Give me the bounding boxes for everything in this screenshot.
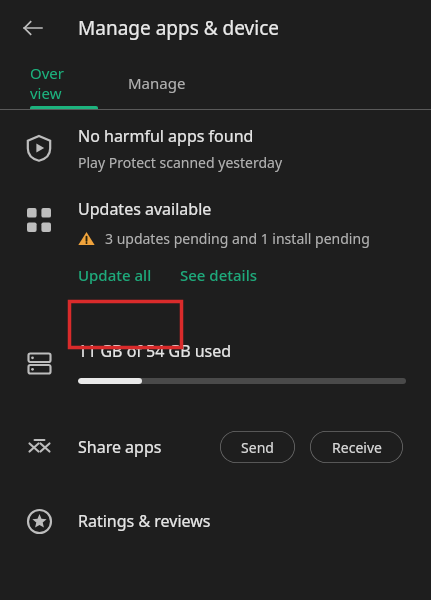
staticText: Manage	[128, 73, 186, 93]
button[interactable]: Back	[12, 7, 54, 49]
staticText: Manage apps & device	[78, 15, 279, 41]
button[interactable]: Updates available	[78, 198, 212, 220]
button[interactable]: Ratings & reviews	[0, 486, 431, 556]
button[interactable]: See details	[180, 262, 257, 288]
staticText: Overview	[30, 63, 68, 103]
staticText: Ratings & reviews	[78, 510, 211, 532]
staticText: 11 GB of 54 GB used	[78, 340, 232, 362]
staticText: No harmful apps found	[78, 125, 254, 147]
staticText: See details	[180, 265, 257, 285]
button[interactable]: Receive	[310, 431, 403, 463]
button[interactable]: Share apps	[78, 436, 162, 458]
button[interactable]: Update all	[78, 262, 152, 288]
staticText: 3 updates pending and 1 install pending	[105, 229, 370, 248]
button[interactable]: No harmful apps found	[0, 110, 431, 186]
staticText: Send	[241, 438, 274, 457]
button[interactable]: Manage	[128, 56, 186, 110]
button[interactable]: 11 GB of 54 GB used	[0, 316, 431, 408]
staticText: Receive	[332, 438, 382, 457]
button[interactable]: Overview	[30, 56, 68, 110]
staticText: Play Protect scanned yesterday	[78, 153, 283, 172]
staticText: Update all	[78, 265, 152, 285]
button[interactable]: Send	[220, 431, 295, 463]
